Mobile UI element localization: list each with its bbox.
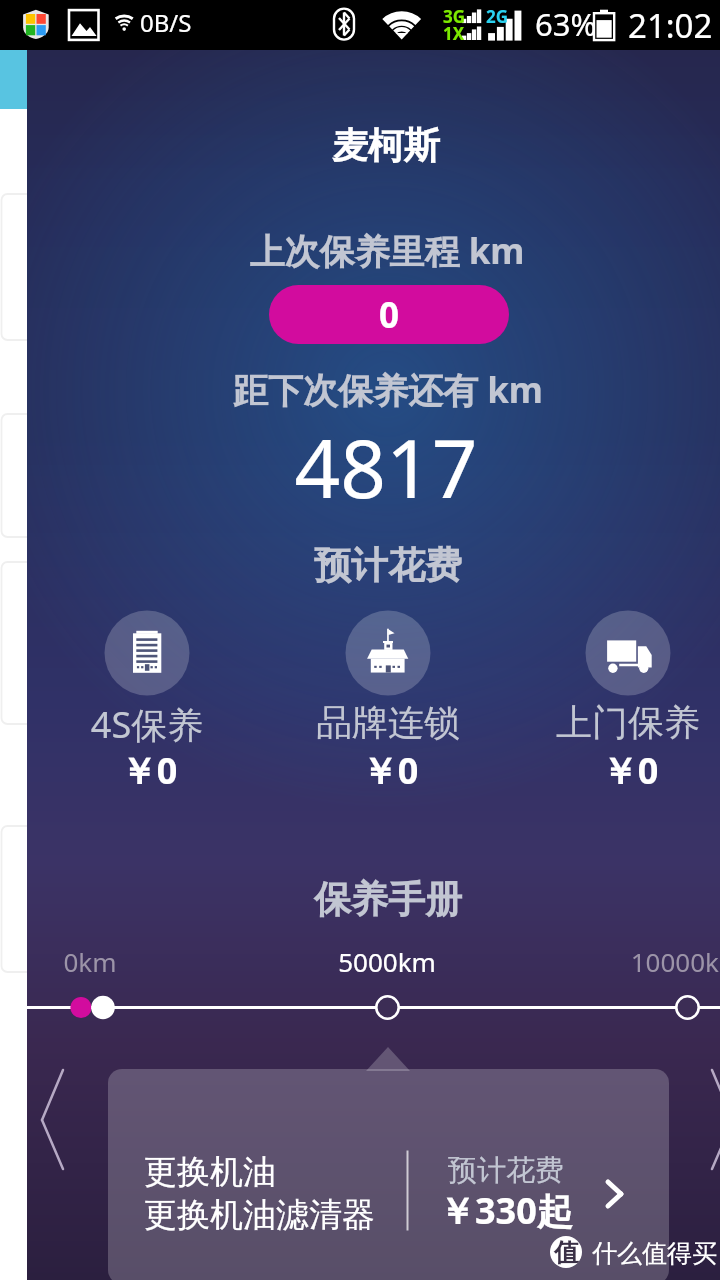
staticText: 63% xyxy=(535,3,597,45)
button[interactable]: 保养里程进度 xyxy=(27,985,720,1030)
staticText: 2G xyxy=(486,5,509,28)
staticText: 更换机油 更换机油滤清器 xyxy=(144,1151,375,1236)
staticText: 3G xyxy=(443,5,466,28)
staticText: 预计花费 xyxy=(28,542,720,589)
staticText: 什么值得买 xyxy=(592,1238,717,1269)
staticText: 10000km xyxy=(327,944,720,979)
staticText: 值 xyxy=(554,1237,579,1268)
button[interactable]: 上门保养 xyxy=(568,610,688,790)
staticText: 21:02 xyxy=(628,3,713,48)
staticText: 4S保养 xyxy=(0,700,507,749)
staticText: ￥0 xyxy=(0,746,509,795)
staticText: 距下次保养还有 km xyxy=(28,366,720,414)
staticText: 上门保养 xyxy=(268,700,720,745)
staticText: ￥0 xyxy=(30,746,720,795)
staticText: 麦柯斯 xyxy=(26,123,720,168)
staticText: 1X xyxy=(443,22,465,45)
staticText: 保养手册 xyxy=(28,876,720,923)
button[interactable]: 上一项 xyxy=(31,1060,85,1180)
staticText: 预计花费 xyxy=(448,1152,564,1189)
button[interactable]: 下一项 xyxy=(692,1060,720,1180)
staticText: 上次保养里程 km xyxy=(27,227,720,275)
staticText: 4817 xyxy=(26,412,720,521)
button[interactable]: 更换机油 更换机油滤清器 xyxy=(108,1069,669,1280)
staticText: 5000km xyxy=(27,944,720,979)
button[interactable]: 0 xyxy=(269,285,509,344)
button[interactable]: 品牌连锁 xyxy=(328,610,448,790)
staticText: 品牌连锁 xyxy=(28,700,720,745)
staticText: ￥330起 xyxy=(439,1186,573,1235)
staticText: 0km xyxy=(0,944,450,979)
button[interactable]: 4S保养 xyxy=(87,610,207,790)
staticText: ￥0 xyxy=(270,746,720,795)
staticText: 0B/S xyxy=(140,6,192,39)
staticText: 0 xyxy=(379,291,400,339)
